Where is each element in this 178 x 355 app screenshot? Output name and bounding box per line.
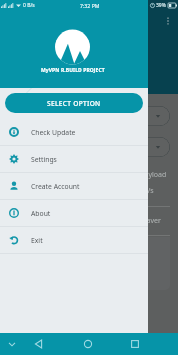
other: Create Account <box>9 181 19 191</box>
button[interactable]: Server <box>10 106 170 126</box>
button[interactable]: Method <box>10 137 170 157</box>
staticText: MyVPN R.BUILD PROJECT <box>41 67 105 74</box>
staticText: Check Update <box>31 128 76 137</box>
other: Settings <box>9 154 19 164</box>
staticText: Method <box>17 142 43 152</box>
staticText: Battery Saver <box>117 216 161 226</box>
button[interactable]: Settings <box>0 146 148 172</box>
button[interactable]: About <box>0 200 148 226</box>
staticText: 0.00 kb/s <box>124 186 154 196</box>
staticText: 7:32 PM <box>80 2 100 9</box>
staticText: Exit <box>31 236 43 245</box>
staticText: About <box>31 209 51 218</box>
staticText: SELECT OPTION <box>47 99 101 108</box>
button[interactable] <box>10 237 170 290</box>
other: Check Update <box>9 127 19 137</box>
staticText: 0 B/s <box>23 2 35 9</box>
staticText: Settings <box>31 155 57 164</box>
button[interactable]: More options <box>163 16 173 26</box>
button[interactable]: Exit <box>0 227 148 253</box>
other: About <box>9 208 19 218</box>
button[interactable]: SELECT OPTION <box>5 93 143 113</box>
other: Exit <box>9 235 19 245</box>
button[interactable]: Check Update <box>0 119 148 145</box>
staticText: Custom Payload <box>113 170 167 180</box>
staticText: Create Account <box>31 182 80 191</box>
staticText: 39% <box>156 2 166 9</box>
staticText: Server <box>17 111 39 121</box>
button[interactable]: Create Account <box>0 173 148 199</box>
